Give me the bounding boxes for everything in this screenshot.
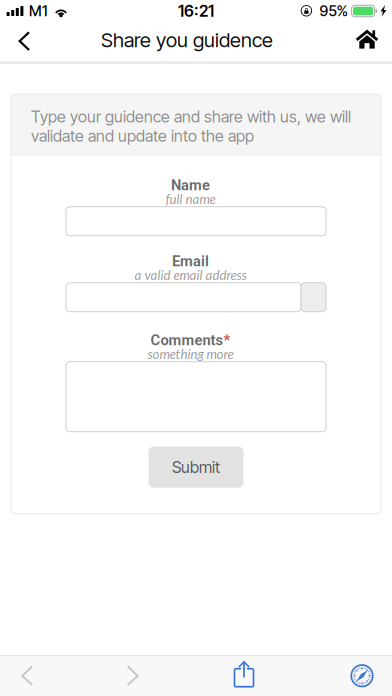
button[interactable]: Submit xyxy=(148,447,243,488)
staticText: Type your guidence and share with us, we… xyxy=(31,107,351,146)
staticText: Email xyxy=(172,253,209,270)
staticText: full name xyxy=(165,191,215,207)
staticText: 16:21 xyxy=(178,1,214,21)
button[interactable]: Safari xyxy=(342,656,382,696)
staticText: Comments xyxy=(150,332,223,349)
staticText: * xyxy=(223,332,230,349)
staticText: Submit xyxy=(172,457,220,477)
staticText: 95% xyxy=(320,2,349,20)
staticText: Name xyxy=(171,177,210,194)
staticText: Share you guidence xyxy=(101,28,273,52)
button[interactable]: Forward xyxy=(118,656,148,696)
button[interactable]: Share xyxy=(224,656,264,696)
button[interactable]: Back xyxy=(0,22,48,61)
button[interactable]: Back xyxy=(12,656,42,696)
staticText: something more xyxy=(147,346,233,362)
staticText: M1 xyxy=(29,2,47,20)
staticText: a valid email address xyxy=(134,267,246,283)
button[interactable]: Home xyxy=(342,22,392,61)
